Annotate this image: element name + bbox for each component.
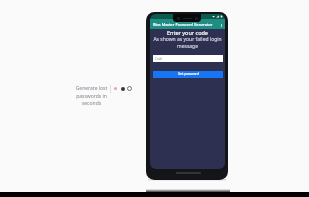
button[interactable]: More options <box>219 23 224 28</box>
button[interactable] <box>127 86 132 91</box>
staticText: As shown as your failed login message <box>151 36 224 50</box>
staticText: Get password <box>178 72 199 76</box>
staticText: Bios Master Password Generator <box>153 22 213 27</box>
staticText: Generate lost passwords in seconds <box>75 85 108 106</box>
button[interactable]: Code <box>153 55 223 62</box>
button[interactable]: Get password <box>153 71 223 78</box>
staticText: Enter your code <box>150 29 225 36</box>
button[interactable] <box>121 87 125 91</box>
button[interactable] <box>114 87 117 90</box>
staticText: Code <box>155 57 163 61</box>
